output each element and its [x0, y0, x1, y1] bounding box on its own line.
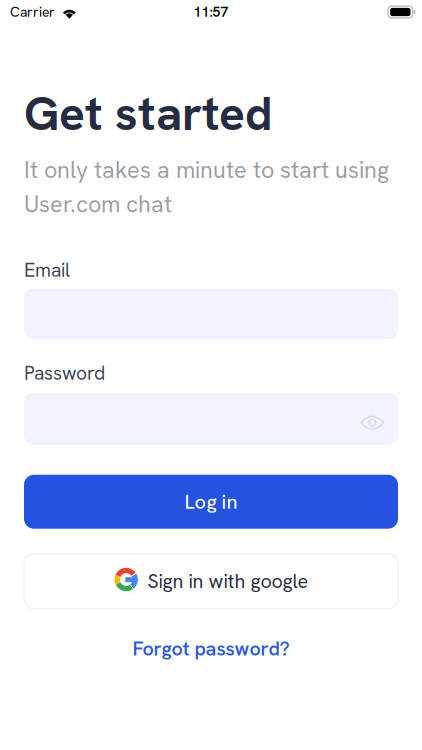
button[interactable]: Sign in with google — [24, 554, 398, 609]
button[interactable]: Log in — [24, 475, 398, 529]
staticText: It only takes a minute to start using — [24, 154, 389, 185]
button[interactable]: Forgot password? — [0, 634, 422, 664]
staticText: Email — [24, 257, 70, 283]
button[interactable]: Show password — [360, 394, 398, 443]
staticText: 11:57 — [193, 3, 228, 21]
staticText: User.com chat — [24, 189, 172, 219]
staticText: Carrier — [10, 3, 55, 21]
staticText: Log in — [184, 489, 237, 515]
staticText: Sign in with google — [147, 568, 308, 594]
staticText: Forgot password? — [132, 636, 289, 662]
staticText: Get started — [24, 82, 273, 144]
staticText: Password — [24, 360, 105, 386]
